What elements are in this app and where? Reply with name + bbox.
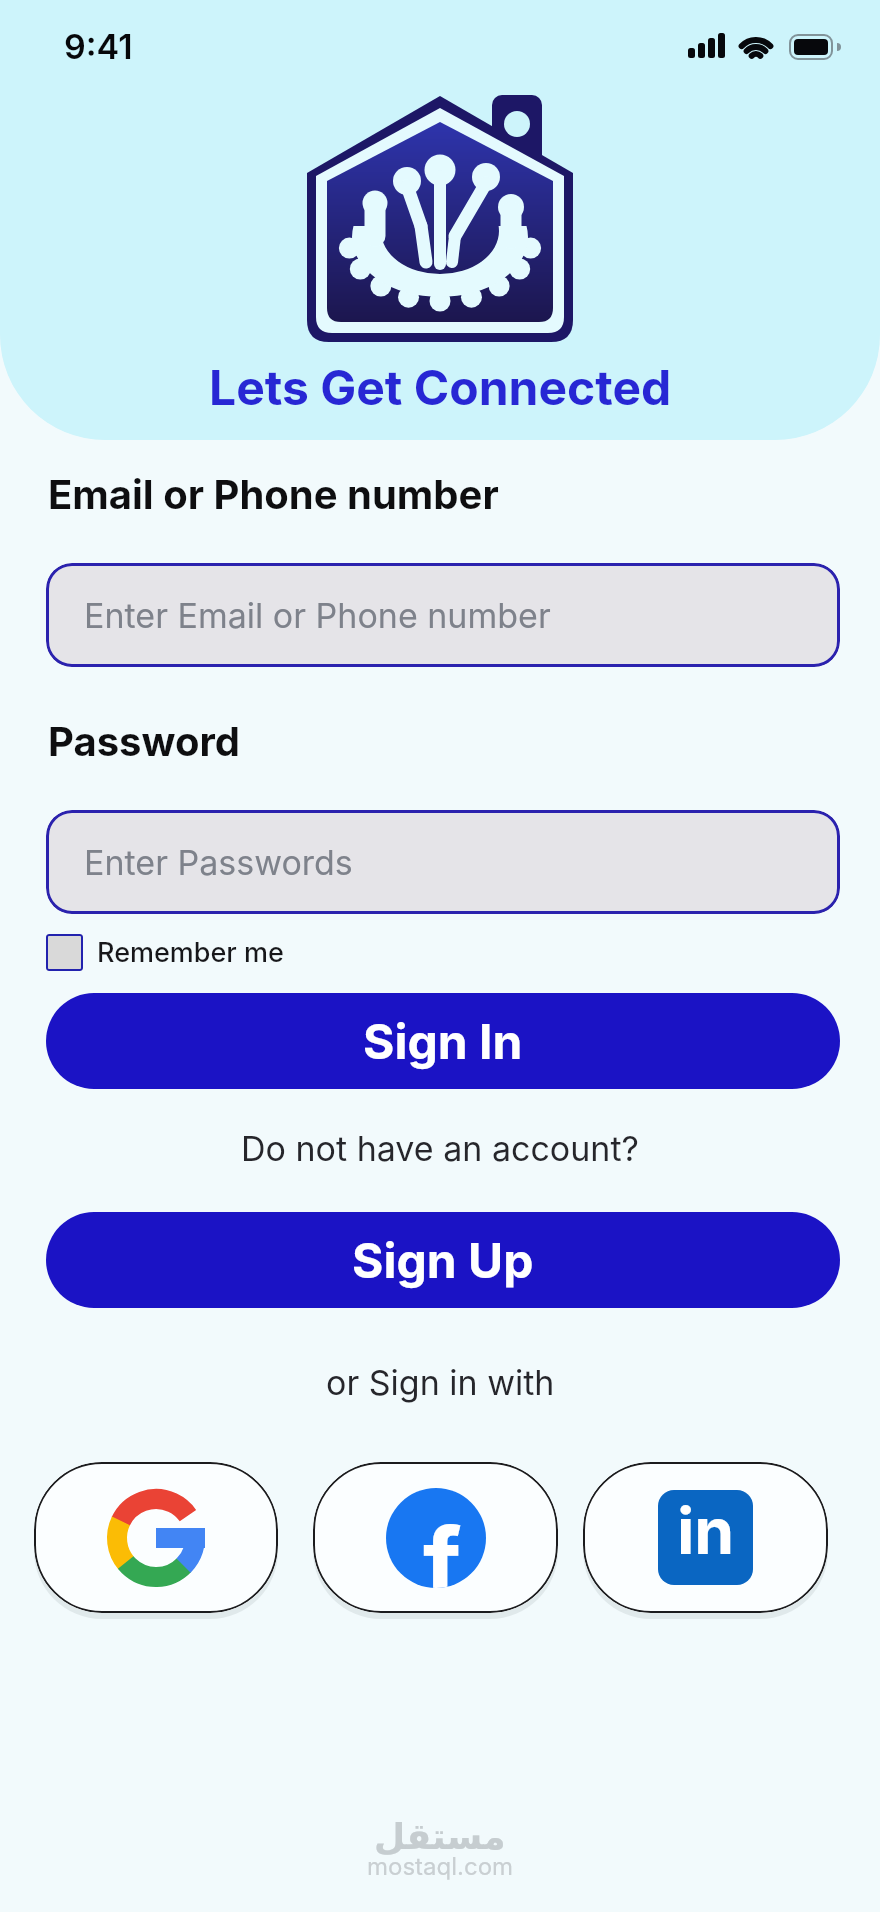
staticText: Email or Phone number	[48, 470, 499, 518]
button[interactable]: Enter Passwords	[46, 810, 840, 914]
staticText: 9:41	[64, 26, 133, 67]
staticText: Sign In	[363, 1012, 523, 1070]
staticText: Enter Passwords	[84, 842, 353, 883]
staticText: in	[677, 1492, 735, 1569]
staticText: f	[423, 1504, 462, 1588]
button[interactable]: in	[583, 1462, 828, 1613]
staticText: Sign Up	[352, 1231, 534, 1289]
button[interactable]: Sign In	[46, 993, 840, 1089]
button[interactable]: Enter Email or Phone number	[46, 563, 840, 667]
staticText: Do not have an account?	[241, 1128, 639, 1169]
button[interactable]	[46, 934, 83, 971]
button[interactable]: Sign Up	[46, 1212, 840, 1308]
button[interactable]	[34, 1462, 278, 1613]
staticText: or Sign in with	[326, 1362, 555, 1403]
staticText: mostaql.com	[367, 1852, 514, 1881]
button[interactable]: f	[313, 1462, 558, 1613]
staticText: مستقل	[374, 1816, 506, 1858]
staticText: Enter Email or Phone number	[84, 595, 551, 636]
staticText: Password	[48, 717, 240, 765]
staticText: Remember me	[97, 936, 284, 969]
staticText: Lets Get Connected	[209, 358, 672, 416]
